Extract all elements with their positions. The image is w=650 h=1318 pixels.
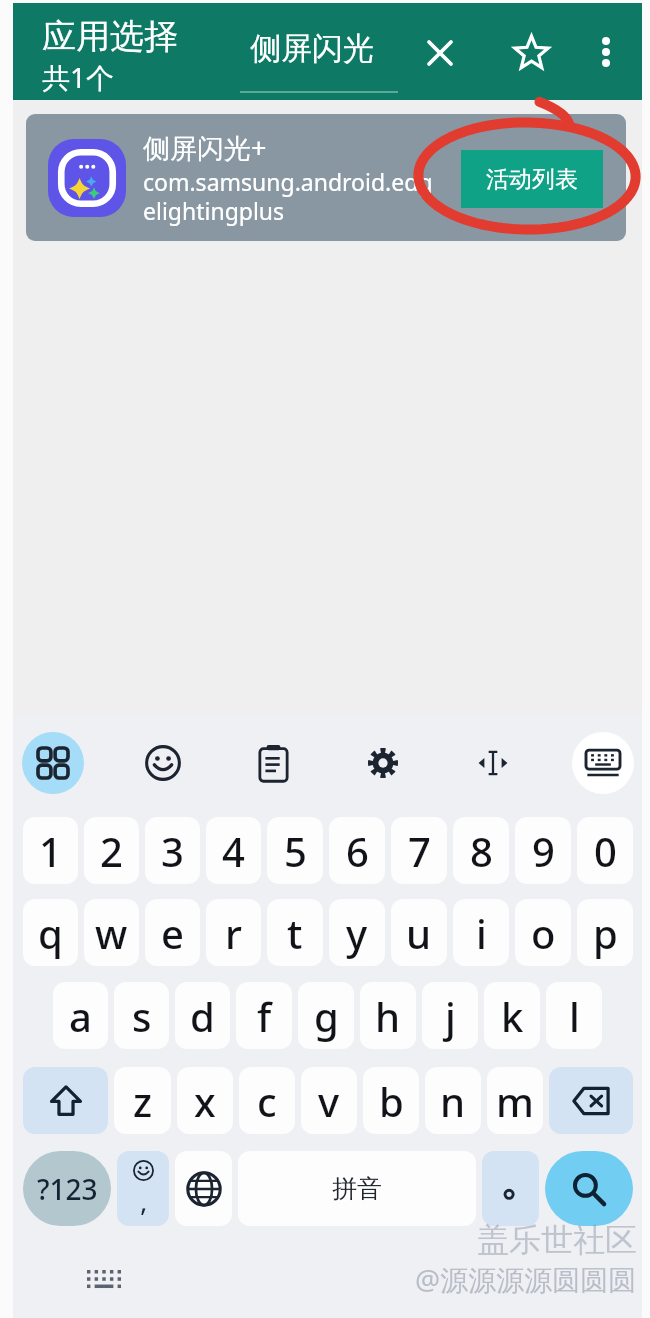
staticText: q [38,906,63,960]
button[interactable]: Search [545,1151,633,1226]
button[interactable]: Emoji and comma [117,1151,169,1226]
staticText: l [569,989,580,1043]
button[interactable]: i [453,899,509,966]
button[interactable]: 8 [453,817,509,884]
staticText: 9 [532,824,555,878]
staticText: 拼音 [332,1173,382,1204]
staticText: h [375,989,401,1043]
button[interactable]: Favorite [503,24,559,80]
button[interactable]: b [363,1067,419,1134]
button[interactable]: z [114,1067,171,1134]
button[interactable]: Apps [22,732,84,794]
staticText: a [69,989,92,1043]
button[interactable]: s [114,982,169,1049]
button[interactable]: 1 [23,817,78,884]
button[interactable]: 4 [206,817,261,884]
staticText: u [406,906,432,960]
button[interactable]: ?123 [23,1151,111,1226]
staticText: 1 [39,824,62,878]
staticText: x [194,1074,216,1128]
staticText: w [95,906,128,960]
staticText: c [257,1074,277,1128]
button[interactable]: 拼音 [238,1151,476,1226]
button[interactable]: x [177,1067,233,1134]
staticText: 2 [100,824,123,878]
button[interactable]: Clear [412,25,468,81]
button[interactable]: y [329,899,385,966]
button[interactable]: e [145,899,200,966]
button[interactable]: m [487,1067,543,1134]
button[interactable]: 活动列表 [461,150,603,208]
staticText: 侧屏闪光 [250,29,374,68]
staticText: com.samsung.android.edgelightingplus [143,166,443,227]
staticText: m [496,1074,534,1128]
staticText: ?123 [37,1170,98,1208]
staticText: v [318,1074,340,1128]
button[interactable]: r [206,899,261,966]
button[interactable]: j [422,982,478,1049]
button[interactable]: n [425,1067,481,1134]
button[interactable]: Period [482,1151,539,1226]
button[interactable]: k [484,982,540,1049]
button[interactable]: 6 [329,817,385,884]
staticText: g [314,989,339,1043]
staticText: b [379,1074,404,1128]
staticText: i [476,906,487,960]
button[interactable]: c [239,1067,295,1134]
staticText: t [287,906,303,960]
staticText: 7 [408,824,431,878]
staticText: r [225,906,242,960]
button[interactable]: 2 [84,817,139,884]
staticText: e [161,906,184,960]
button[interactable]: d [175,982,230,1049]
button[interactable]: o [515,899,571,966]
staticText: k [501,989,524,1043]
button[interactable]: Text cursor [462,732,524,794]
staticText: 3 [161,824,184,878]
button[interactable]: l [546,982,602,1049]
staticText: d [190,989,215,1043]
button[interactable]: Language [175,1151,232,1226]
button[interactable]: Keyboard [572,732,634,794]
staticText: z [133,1074,153,1128]
button[interactable]: h [360,982,416,1049]
button[interactable]: 7 [391,817,447,884]
button[interactable]: 侧屏闪光 [250,19,374,77]
staticText: f [257,989,272,1043]
button[interactable]: w [84,899,139,966]
button[interactable]: More options [578,24,634,80]
button[interactable]: 侧屏闪光+ [26,114,626,241]
staticText: @源源源源圆圆圆 [415,1260,637,1298]
button[interactable]: 9 [515,817,571,884]
staticText: s [132,989,152,1043]
staticText: 5 [284,824,307,878]
button[interactable]: Emoji [132,732,194,794]
button[interactable]: 0 [577,817,633,884]
button[interactable]: q [23,899,78,966]
staticText: y [346,906,368,960]
staticText: o [531,906,556,960]
staticText: 盖乐世社区 [477,1220,637,1260]
button[interactable]: Hide keyboard [87,1270,121,1292]
staticText: 活动列表 [486,165,578,194]
button[interactable]: f [236,982,292,1049]
staticText: 6 [346,824,369,878]
button[interactable]: p [577,899,633,966]
button[interactable]: Backspace [549,1067,633,1134]
staticText: 8 [470,824,493,878]
button[interactable]: g [298,982,354,1049]
button[interactable]: t [267,899,323,966]
button[interactable]: u [391,899,447,966]
button[interactable]: 5 [267,817,323,884]
button[interactable]: Shift [23,1067,108,1134]
staticText: 0 [594,824,617,878]
button[interactable]: a [53,982,108,1049]
staticText: 共1个 [42,58,115,96]
staticText: 应用选择 [42,15,178,58]
button[interactable]: v [301,1067,357,1134]
staticText: p [593,906,618,960]
staticText: 4 [222,824,245,878]
button[interactable]: Settings [352,732,414,794]
button[interactable]: Clipboard [242,732,304,794]
button[interactable]: 3 [145,817,200,884]
